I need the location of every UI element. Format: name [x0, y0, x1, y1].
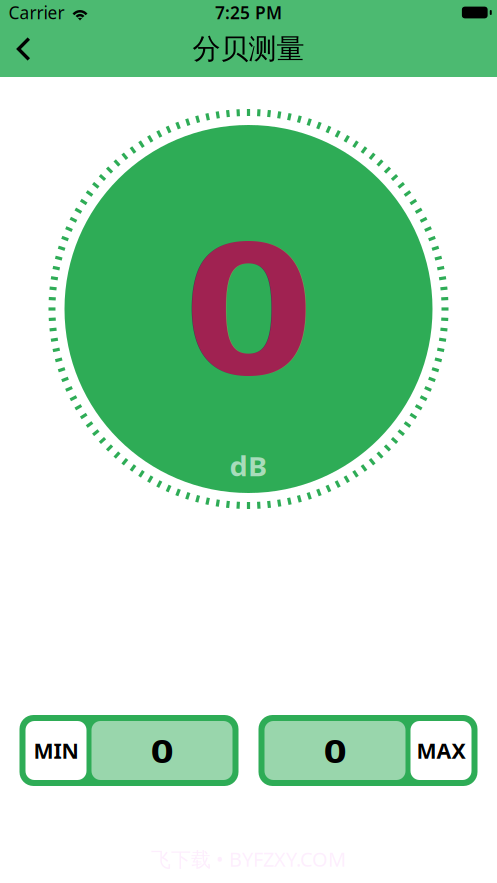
staticText: MIN: [33, 736, 78, 765]
staticText: 0: [196, 182, 300, 424]
staticText: 7:25 PM: [215, 1, 282, 24]
staticText: MAX: [416, 736, 465, 765]
staticText: 飞下载 • BYFZXY.COM: [151, 846, 346, 872]
staticText: 0: [326, 729, 344, 772]
staticText: Carrier: [8, 1, 64, 24]
button[interactable]: Back: [1, 26, 47, 72]
staticText: 0: [153, 729, 171, 772]
staticText: 分贝测量: [192, 32, 304, 66]
button[interactable]: MIN: [19, 715, 238, 786]
button[interactable]: 0: [258, 715, 477, 786]
staticText: dB: [231, 448, 266, 484]
